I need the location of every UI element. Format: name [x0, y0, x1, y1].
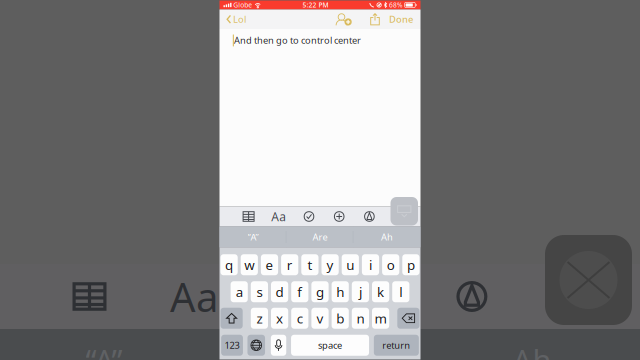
button[interactable]: Add People — [329, 9, 358, 29]
button[interactable]: t — [301, 254, 318, 275]
button[interactable]: Next Keyboard — [247, 335, 265, 356]
button[interactable]: Ah — [353, 226, 420, 247]
button[interactable]: o — [382, 254, 399, 275]
button[interactable]: space — [291, 335, 369, 356]
button[interactable]: c — [291, 308, 308, 329]
button[interactable]: 123 — [221, 335, 243, 356]
staticText: b — [336, 309, 344, 327]
button[interactable]: Lol — [220, 9, 251, 29]
staticText: c — [297, 309, 303, 327]
staticText: v — [316, 309, 323, 327]
staticText: “A” — [247, 231, 258, 243]
button[interactable]: w — [241, 254, 258, 275]
button[interactable]: Shift — [220, 308, 243, 329]
staticText: k — [377, 283, 384, 301]
button[interactable]: Done — [385, 9, 419, 29]
staticText: r — [287, 256, 293, 274]
staticText: space — [318, 339, 342, 351]
button[interactable]: b — [332, 308, 349, 329]
button[interactable]: u — [342, 254, 359, 275]
button[interactable]: y — [321, 254, 339, 275]
button[interactable]: r — [281, 254, 298, 275]
button[interactable]: l — [392, 281, 409, 302]
staticText: u — [346, 256, 354, 274]
staticText: Aa — [170, 270, 218, 323]
button[interactable]: z — [251, 308, 268, 329]
button[interactable]: Are — [286, 226, 353, 247]
staticText: g — [316, 283, 324, 301]
button[interactable]: n — [352, 308, 369, 329]
button[interactable]: s — [251, 281, 268, 302]
staticText: s — [256, 283, 262, 301]
button[interactable]: Dictate — [271, 335, 286, 356]
staticText: h — [336, 283, 344, 301]
staticText: a — [236, 283, 243, 301]
staticText: w — [244, 256, 254, 274]
button[interactable]: Checklist — [294, 206, 324, 226]
staticText: z — [256, 309, 262, 327]
staticText: Done — [389, 13, 413, 25]
button[interactable]: m — [372, 308, 389, 329]
staticText: d — [276, 283, 284, 301]
button[interactable]: Hide Keyboard — [390, 197, 418, 225]
staticText: Ah — [381, 231, 393, 243]
staticText: i — [369, 256, 372, 274]
button[interactable]: d — [271, 281, 288, 302]
button[interactable]: p — [402, 254, 419, 275]
staticText: Aa — [271, 208, 286, 224]
staticText: y — [327, 256, 334, 274]
staticText: “A” — [85, 340, 122, 360]
button[interactable]: a — [231, 281, 248, 302]
staticText: j — [359, 283, 362, 301]
staticText: m — [375, 309, 387, 327]
staticText: p — [407, 256, 415, 274]
staticText: Lol — [233, 13, 246, 25]
staticText: f — [297, 283, 302, 301]
button[interactable]: Markup — [354, 206, 384, 226]
button[interactable]: Insert — [324, 206, 354, 226]
staticText: x — [276, 309, 283, 327]
button[interactable]: g — [311, 281, 329, 302]
staticText: Globe — [233, 1, 252, 9]
button[interactable]: k — [372, 281, 389, 302]
button[interactable]: Share — [365, 9, 385, 29]
staticText: q — [225, 256, 233, 274]
button[interactable]: x — [271, 308, 288, 329]
button[interactable]: v — [311, 308, 329, 329]
button[interactable]: return — [374, 335, 419, 356]
button[interactable]: h — [332, 281, 349, 302]
staticText: Ah — [512, 340, 551, 360]
button[interactable]: q — [220, 254, 238, 275]
button[interactable]: Table — [233, 206, 264, 226]
button[interactable]: f — [291, 281, 308, 302]
staticText: 123 — [224, 339, 239, 351]
staticText: l — [399, 283, 402, 301]
staticText: 5:22 PM — [302, 1, 328, 9]
button[interactable]: e — [261, 254, 278, 275]
staticText: e — [265, 256, 273, 274]
staticText: o — [387, 256, 395, 274]
staticText: t — [307, 256, 312, 274]
button[interactable]: Delete — [397, 308, 419, 329]
button[interactable]: “A” — [219, 226, 286, 247]
staticText: 68% — [389, 1, 403, 9]
staticText: Are — [312, 231, 327, 243]
button[interactable]: j — [352, 281, 369, 302]
staticText: And then go to control center — [234, 34, 361, 46]
button[interactable]: Format — [264, 206, 294, 226]
staticText: n — [356, 309, 364, 327]
staticText: return — [382, 339, 410, 351]
button[interactable]: i — [362, 254, 379, 275]
